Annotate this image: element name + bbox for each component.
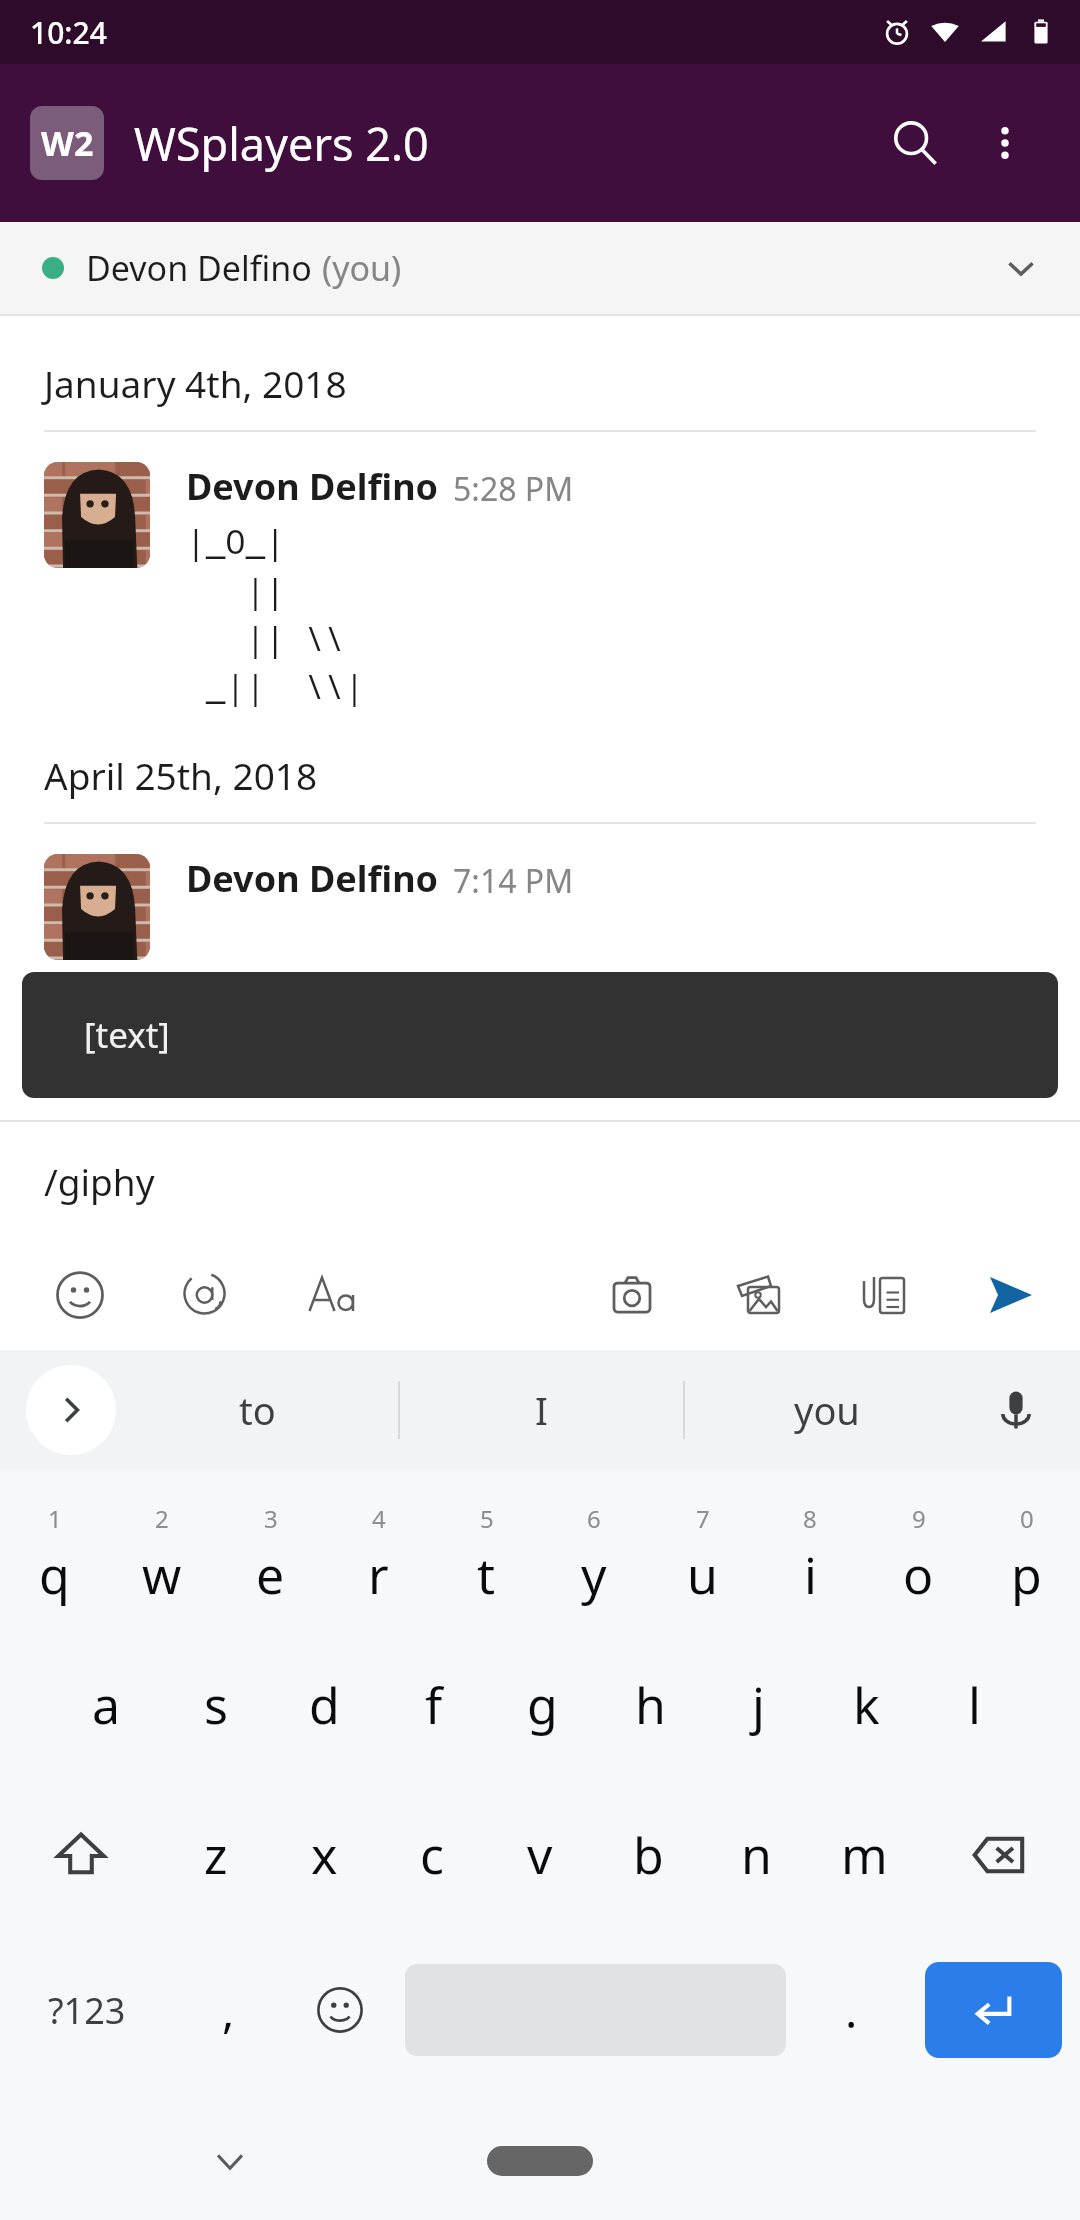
button[interactable]: Search <box>870 98 960 188</box>
staticText: /giphy <box>44 1156 155 1206</box>
button[interactable]: Emoji <box>44 1259 116 1331</box>
button[interactable]: to <box>116 1350 398 1470</box>
button[interactable]: More suggestions <box>26 1365 116 1455</box>
staticText: r <box>368 1541 389 1609</box>
button[interactable]: 7 <box>648 1480 756 1630</box>
button[interactable]: m <box>810 1780 918 1930</box>
staticText: 0 <box>1020 1502 1034 1535</box>
button[interactable]: x <box>270 1780 378 1930</box>
staticText: g <box>527 1671 558 1739</box>
staticText: Devon Delfino <box>186 462 439 511</box>
button[interactable]: 4 <box>324 1480 432 1630</box>
staticText: 3 <box>264 1502 278 1535</box>
button[interactable]: I <box>400 1350 683 1470</box>
button[interactable]: c <box>378 1780 486 1930</box>
staticText: . <box>845 1979 858 2042</box>
button[interactable]: 8 <box>756 1480 864 1630</box>
staticText: o <box>903 1541 934 1609</box>
button[interactable]: n <box>702 1780 810 1930</box>
button[interactable]: Attach file <box>848 1259 920 1331</box>
staticText: v <box>527 1821 553 1889</box>
button[interactable]: 3 <box>216 1480 324 1630</box>
staticText: z <box>204 1821 228 1889</box>
button[interactable]: W2 <box>30 106 104 180</box>
staticText: (you) <box>322 245 402 291</box>
staticText: n <box>741 1821 772 1889</box>
staticText: 7:14 PM <box>453 859 574 903</box>
button[interactable]: /giphy <box>0 1122 1080 1240</box>
staticText: q <box>39 1541 70 1609</box>
button[interactable]: Emoji keyboard <box>284 1930 395 2090</box>
button[interactable]: d <box>270 1630 379 1780</box>
button[interactable]: Voice input <box>968 1362 1064 1458</box>
staticText: f <box>425 1671 443 1739</box>
staticText: l <box>968 1671 981 1739</box>
button[interactable]: Hide keyboard <box>190 2121 270 2201</box>
staticText: s <box>204 1671 228 1739</box>
staticText: k <box>853 1671 880 1739</box>
staticText: p <box>1011 1541 1042 1609</box>
staticText: w <box>142 1541 182 1609</box>
staticText: |_O_| || || \\ _|| \\| <box>186 519 365 708</box>
button[interactable]: ?123 <box>0 1930 173 2090</box>
button[interactable]: f <box>379 1630 488 1780</box>
button[interactable]: l <box>920 1630 1028 1780</box>
button[interactable]: z <box>162 1780 270 1930</box>
button[interactable]: Home <box>487 2146 593 2176</box>
button[interactable]: Camera <box>596 1259 668 1331</box>
staticText: u <box>687 1541 718 1609</box>
button[interactable]: Devon Delfino <box>0 854 1080 960</box>
staticText: x <box>311 1821 338 1889</box>
staticText: you <box>794 1384 860 1436</box>
staticText: i <box>804 1541 817 1609</box>
staticText: b <box>633 1821 664 1889</box>
button[interactable]: , <box>173 1930 284 2090</box>
staticText: April 25th, 2018 <box>44 750 318 800</box>
button[interactable]: Devon Delfino <box>0 462 1080 708</box>
staticText: 9 <box>912 1502 926 1535</box>
staticText: , <box>222 1979 235 2042</box>
button[interactable]: . <box>796 1930 907 2090</box>
button[interactable]: g <box>488 1630 596 1780</box>
staticText: I <box>535 1384 548 1436</box>
staticText: 10:24 <box>30 12 107 53</box>
button[interactable]: 1 <box>0 1480 108 1630</box>
staticText: 5 <box>480 1502 494 1535</box>
button[interactable]: 6 <box>540 1480 648 1630</box>
button[interactable]: 9 <box>864 1480 972 1630</box>
staticText: m <box>841 1821 888 1889</box>
staticText: 2 <box>155 1502 169 1535</box>
button[interactable]: Mention <box>170 1259 242 1331</box>
staticText: 7 <box>696 1502 710 1535</box>
button[interactable]: Backspace <box>918 1780 1080 1930</box>
button[interactable]: Shift <box>0 1780 162 1930</box>
button[interactable]: More options <box>960 98 1050 188</box>
button[interactable]: you <box>685 1350 968 1470</box>
button[interactable]: a <box>52 1630 161 1780</box>
staticText: t <box>477 1541 496 1609</box>
button[interactable]: 5 <box>432 1480 540 1630</box>
staticText: [text] <box>84 1011 170 1059</box>
staticText: j <box>752 1671 765 1739</box>
button[interactable]: 2 <box>108 1480 216 1630</box>
staticText: h <box>635 1671 666 1739</box>
button[interactable]: Formatting <box>296 1259 368 1331</box>
staticText: y <box>581 1541 607 1609</box>
button[interactable]: j <box>704 1630 812 1780</box>
button[interactable]: Photos <box>722 1259 794 1331</box>
button[interactable]: k <box>812 1630 920 1780</box>
button[interactable]: 0 <box>972 1480 1080 1630</box>
staticText: W2 <box>41 120 94 166</box>
button[interactable]: v <box>486 1780 594 1930</box>
button[interactable]: b <box>594 1780 702 1930</box>
button[interactable]: Send <box>974 1259 1046 1331</box>
button[interactable]: h <box>596 1630 704 1780</box>
button[interactable]: s <box>161 1630 270 1780</box>
button[interactable]: Enter <box>925 1962 1062 2058</box>
staticText: ?123 <box>48 1986 126 2035</box>
staticText: 4 <box>372 1502 386 1535</box>
button[interactable]: [text] <box>22 972 1058 1098</box>
staticText: WSplayers 2.0 <box>134 113 870 174</box>
button[interactable]: Devon Delfino <box>0 222 1080 314</box>
